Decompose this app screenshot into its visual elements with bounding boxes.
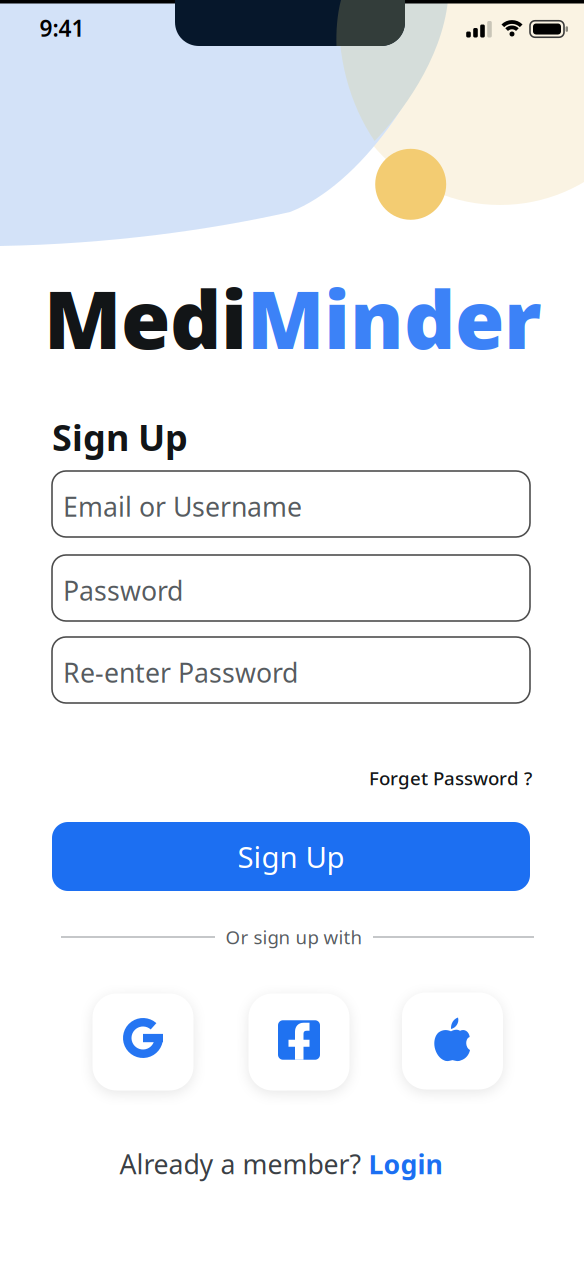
button[interactable]: Sign up with Google [92, 993, 193, 1090]
staticText: 9:41 [39, 13, 84, 43]
staticText: Medi [44, 265, 247, 371]
staticText: Already a member? [119, 1146, 361, 1182]
button[interactable]: Sign Up [52, 822, 530, 891]
button[interactable]: Login [368, 1146, 442, 1182]
button[interactable]: Sign up with Apple [402, 992, 503, 1089]
staticText: Or sign up with [225, 925, 362, 949]
staticText: Forget Password ? [369, 766, 532, 790]
button[interactable]: Email or Username [52, 471, 530, 537]
button[interactable]: Re-enter Password [52, 637, 530, 703]
staticText: Sign Up [52, 413, 188, 461]
button[interactable]: Sign up with Facebook [248, 993, 349, 1090]
staticText: Sign Up [237, 837, 344, 876]
button[interactable]: Forget Password ? [369, 766, 532, 790]
staticText: Email or Username [63, 489, 302, 524]
staticText: Password [63, 573, 183, 608]
staticText: Re-enter Password [63, 655, 298, 690]
staticText: Minder [247, 265, 542, 371]
staticText: Login [368, 1146, 442, 1182]
button[interactable]: Password [52, 555, 530, 621]
